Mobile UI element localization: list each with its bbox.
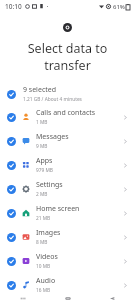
staticText: 61% — [113, 3, 125, 11]
staticText: 10:10 — [5, 2, 22, 11]
button[interactable]: Apps — [0, 153, 135, 177]
staticText: 1.21 GB / About 4 minutes — [23, 96, 82, 103]
button[interactable]: Calls and contacts — [0, 105, 135, 129]
staticText: Messages — [36, 132, 69, 142]
button[interactable]: 9 selected — [0, 83, 135, 105]
staticText: Apps — [36, 156, 53, 166]
button[interactable]: Home — [45, 297, 90, 300]
button[interactable]: Videos — [0, 249, 135, 273]
staticText: 979 MB — [36, 167, 53, 174]
button[interactable]: Messages — [0, 129, 135, 153]
staticText: Home screen — [36, 204, 80, 214]
staticText: Images — [36, 228, 61, 238]
button[interactable]: Settings — [0, 177, 135, 201]
staticText: 8 MB — [36, 239, 48, 246]
staticText: Audio — [36, 276, 56, 286]
staticText: Settings — [36, 180, 63, 190]
staticText: 10 MB — [36, 263, 51, 270]
staticText: Videos — [36, 252, 58, 262]
staticText: 1 MB — [36, 119, 48, 126]
button[interactable]: Images — [0, 225, 135, 249]
button[interactable]: Audio — [0, 273, 135, 297]
staticText: 16 MB — [36, 287, 51, 294]
staticText: Calls and contacts — [36, 108, 96, 118]
staticText: 9 MB — [36, 143, 48, 150]
staticText: 2 MB — [36, 191, 48, 198]
button[interactable]: Recent apps — [0, 297, 45, 300]
staticText: Select data to transfer — [6, 40, 129, 74]
staticText: 9 selected — [23, 85, 57, 95]
button[interactable]: Back — [90, 297, 135, 300]
staticText: 21 MB — [36, 215, 51, 222]
button[interactable]: Home screen — [0, 201, 135, 225]
